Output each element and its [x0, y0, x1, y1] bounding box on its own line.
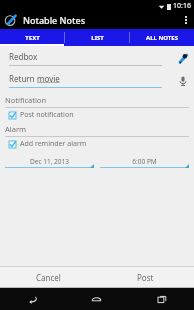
staticText: Redbox	[9, 51, 38, 62]
staticText: Cancel	[36, 272, 61, 283]
button[interactable]: Post notification	[0, 108, 194, 122]
staticText: Dec 11, 2013	[30, 157, 69, 166]
button[interactable]: Add reminder alarm	[0, 137, 194, 151]
staticText: LIST	[91, 34, 104, 42]
staticText: movie	[37, 73, 60, 84]
button[interactable]: App icon	[4, 13, 18, 27]
button[interactable]: Recent apps	[129, 288, 194, 310]
button[interactable]: Cancel	[0, 267, 97, 287]
staticText: Notable Notes	[23, 14, 86, 26]
staticText: ALL NOTES	[146, 34, 178, 42]
staticText: TEXT	[25, 34, 40, 42]
button[interactable]: Post	[97, 267, 194, 287]
button[interactable]: TEXT	[0, 29, 64, 46]
staticText: 10:16	[173, 1, 191, 11]
staticText: Return	[9, 73, 37, 84]
staticText: Post notification	[20, 110, 74, 120]
staticText: Notification	[5, 95, 47, 105]
button[interactable]: Pick date	[5, 154, 94, 168]
staticText: Add reminder alarm	[20, 139, 87, 149]
staticText: Post	[137, 272, 154, 283]
button[interactable]: ALL NOTES	[130, 29, 194, 46]
button[interactable]: Voice input	[172, 72, 194, 89]
button[interactable]: Draw	[172, 50, 194, 67]
button[interactable]: Home	[64, 288, 129, 310]
button[interactable]: More options	[178, 11, 194, 29]
staticText: Alarm	[5, 124, 27, 134]
button[interactable]: LIST	[65, 29, 129, 46]
staticText: 6:00 PM	[132, 157, 157, 166]
button[interactable]: Back	[0, 288, 64, 310]
button[interactable]: Pick time	[100, 154, 189, 168]
